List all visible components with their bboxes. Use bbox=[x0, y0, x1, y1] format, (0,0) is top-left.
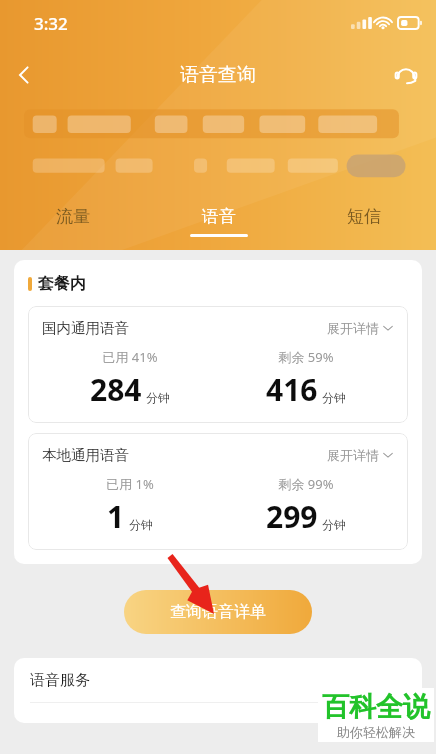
button[interactable]: 流量 bbox=[0, 192, 146, 250]
staticText: 百科全说 bbox=[322, 690, 430, 724]
button[interactable]: 语音 bbox=[146, 192, 291, 250]
button[interactable]: Customer service bbox=[384, 53, 428, 97]
staticText: 分钟 bbox=[322, 517, 346, 532]
staticText: 语音服务 bbox=[30, 671, 90, 690]
staticText: 短信 bbox=[347, 206, 381, 227]
button[interactable]: 语音服务 bbox=[14, 658, 422, 702]
staticText: 已用 1% bbox=[106, 475, 154, 493]
button[interactable]: 国内通用语音 bbox=[42, 319, 394, 337]
staticText: 剩余 59% bbox=[278, 348, 334, 366]
staticText: 展开详情 bbox=[327, 320, 379, 336]
staticText: 分钟 bbox=[129, 517, 153, 532]
staticText: 299 bbox=[266, 496, 318, 537]
staticText: 分钟 bbox=[146, 390, 170, 405]
staticText: 语音查询 bbox=[180, 63, 256, 87]
staticText: 本地通用语音 bbox=[42, 446, 129, 464]
button[interactable]: 短信 bbox=[291, 192, 436, 250]
staticText: 国内通用语音 bbox=[42, 319, 129, 337]
staticText: 3:32 bbox=[34, 12, 68, 35]
button[interactable]: 查询语音详单 bbox=[124, 590, 312, 634]
button[interactable]: Back bbox=[0, 51, 48, 99]
staticText: 套餐内 bbox=[38, 274, 86, 294]
staticText: 已用 41% bbox=[102, 348, 158, 366]
staticText: 流量 bbox=[56, 206, 90, 227]
staticText: 展开详情 bbox=[327, 447, 379, 463]
staticText: 语音 bbox=[202, 206, 236, 227]
staticText: 助你轻松解决 bbox=[337, 724, 415, 740]
staticText: 分钟 bbox=[322, 390, 346, 405]
staticText: 查询语音详单 bbox=[170, 602, 266, 622]
staticText: 剩余 99% bbox=[278, 475, 334, 493]
button[interactable]: 本地通用语音 bbox=[42, 446, 394, 464]
staticText: 1 bbox=[107, 496, 125, 537]
staticText: 416 bbox=[266, 369, 318, 410]
staticText: 284 bbox=[90, 369, 142, 410]
